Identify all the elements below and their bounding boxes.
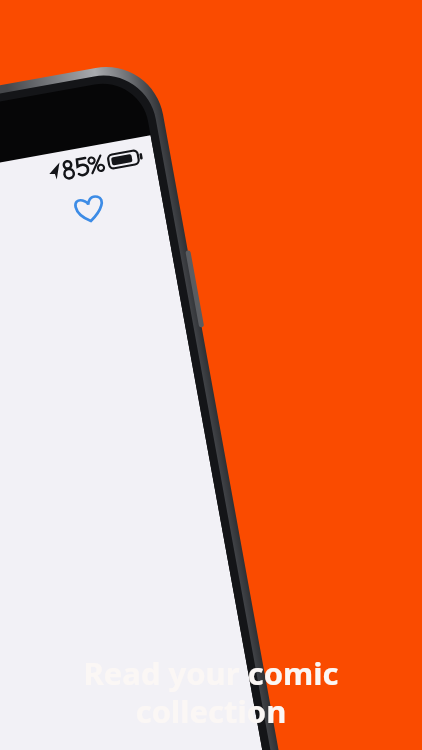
other: Phone screenshot <box>0 0 422 750</box>
button[interactable]: Read your comic collection <box>20 652 402 732</box>
staticText: Read your comic collection <box>20 652 402 732</box>
